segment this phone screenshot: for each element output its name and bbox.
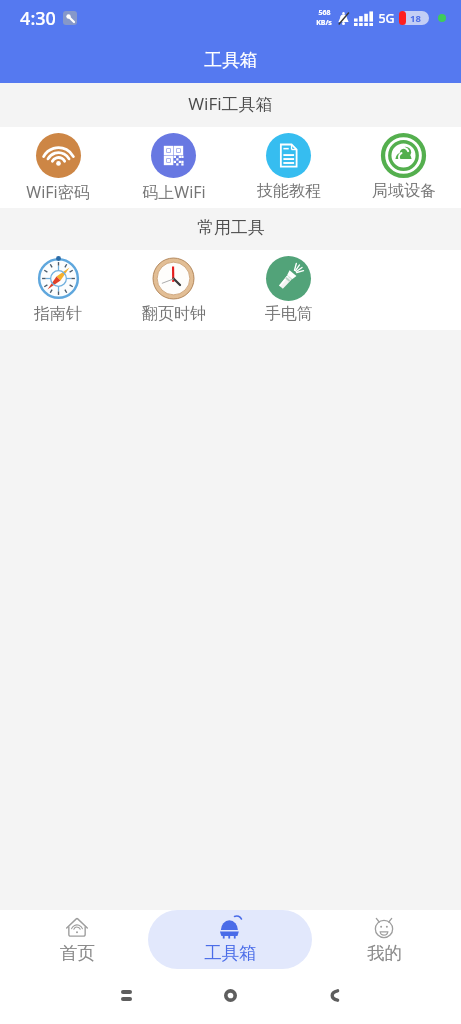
staticText: WiFi密码 bbox=[26, 181, 90, 203]
staticText: 翻页时钟 bbox=[142, 304, 206, 324]
staticText: 4:30 bbox=[20, 6, 56, 31]
staticText: 我的 bbox=[367, 942, 402, 964]
staticText: 指南针 bbox=[34, 304, 82, 324]
staticText: 手电筒 bbox=[265, 304, 313, 324]
button[interactable]: 首页 bbox=[0, 910, 159, 969]
button[interactable]: 工具箱 bbox=[148, 910, 312, 969]
button[interactable]: WiFi密码 bbox=[0, 127, 116, 208]
staticText: 常用工具 bbox=[197, 217, 265, 238]
staticText: WiFi工具箱 bbox=[188, 92, 273, 115]
button[interactable]: 手电筒 bbox=[231, 250, 346, 330]
staticText: KB/s bbox=[316, 18, 332, 28]
staticText: 5G bbox=[378, 10, 395, 27]
button[interactable]: Back bbox=[311, 973, 356, 1018]
button[interactable]: Home bbox=[208, 973, 253, 1018]
button[interactable]: 码上WiFi bbox=[116, 127, 231, 208]
staticText: 工具箱 bbox=[204, 49, 258, 71]
button[interactable]: 我的 bbox=[302, 910, 461, 969]
staticText: 工具箱 bbox=[204, 942, 257, 964]
staticText: 局域设备 bbox=[372, 181, 436, 201]
button[interactable]: Recents bbox=[104, 973, 149, 1018]
staticText: 技能教程 bbox=[257, 181, 321, 201]
staticText: 首页 bbox=[60, 942, 95, 964]
button[interactable]: 翻页时钟 bbox=[116, 250, 231, 330]
button[interactable]: 指南针 bbox=[0, 250, 116, 330]
staticText: 码上WiFi bbox=[142, 181, 206, 203]
button[interactable]: 技能教程 bbox=[231, 127, 346, 208]
staticText: 568 bbox=[318, 8, 331, 18]
button[interactable]: 局域设备 bbox=[346, 127, 461, 208]
staticText: 18 bbox=[410, 12, 421, 25]
